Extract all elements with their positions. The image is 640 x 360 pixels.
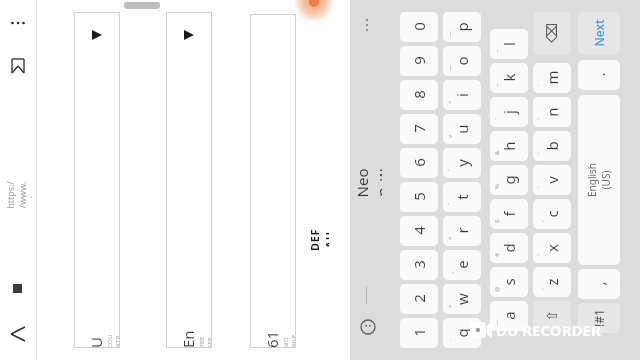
staticText: ¨ — [536, 83, 544, 87]
staticText: MOBILE NUMBER — [282, 334, 296, 348]
staticText: ¨ — [536, 151, 544, 155]
staticText: ¸ — [446, 271, 454, 273]
button[interactable]: Emoji — [356, 314, 380, 340]
staticText: × — [446, 304, 454, 308]
staticText: Neon_warriør23db — [352, 168, 382, 198]
button[interactable]: — — [443, 46, 481, 76]
button[interactable]: ^ — [443, 80, 481, 110]
staticText: 9 — [409, 56, 429, 65]
button[interactable]: Bookmark — [6, 52, 30, 80]
button[interactable]: ¨ — [533, 131, 571, 161]
staticText: — — [446, 64, 454, 71]
staticText: v — [542, 176, 562, 184]
staticText: a — [499, 311, 519, 320]
button[interactable]: @ — [490, 267, 528, 297]
staticText: u — [452, 124, 472, 134]
button[interactable]: More options — [6, 6, 30, 40]
staticText: . — [589, 72, 609, 77]
button[interactable]: !#1 — [578, 303, 620, 333]
staticText: ¸ — [536, 288, 544, 290]
button[interactable]: × — [443, 284, 481, 314]
staticText: b — [542, 141, 562, 151]
button[interactable]: Back — [6, 318, 30, 350]
button[interactable]: English (US) — [578, 95, 620, 265]
staticText: q — [452, 328, 472, 338]
staticText: n — [542, 107, 562, 117]
staticText: ^ — [446, 100, 454, 104]
staticText: !#1 — [591, 309, 607, 327]
button[interactable]: 1 — [400, 318, 438, 348]
staticText: 4 — [409, 226, 429, 235]
staticText: ~ — [493, 83, 501, 87]
button[interactable]: ⌫ — [533, 12, 571, 54]
staticText: c — [542, 210, 562, 218]
button[interactable]: ~ — [490, 29, 528, 59]
staticText: DU RECORDER — [496, 320, 601, 340]
staticText: English (US) — [585, 159, 613, 201]
staticText: ~ — [493, 49, 501, 53]
button[interactable]: . — [578, 60, 620, 90]
staticText: UNITED STATES — [86, 326, 108, 348]
button[interactable]: , — [578, 269, 620, 299]
staticText: h — [499, 141, 519, 151]
button[interactable]: ¤ — [443, 216, 481, 246]
button[interactable]: 4 — [400, 216, 438, 246]
staticText: d — [499, 243, 519, 253]
button[interactable]: — — [490, 301, 528, 331]
staticText: l — [499, 42, 519, 46]
staticText: DEFAULT BILLING ADDRESS — [307, 229, 329, 251]
button[interactable]: % — [490, 165, 528, 195]
staticText: 1 — [409, 328, 429, 337]
button[interactable]: ¸ — [443, 250, 481, 280]
button[interactable]: COUNTRY / REGION — [74, 12, 120, 348]
button[interactable]: 8 — [400, 80, 438, 110]
button[interactable]: 6 — [400, 148, 438, 178]
button[interactable]: v — [443, 114, 481, 144]
button[interactable]: ¨ — [533, 63, 571, 93]
button[interactable]: ~ — [490, 63, 528, 93]
button[interactable]: $ — [490, 199, 528, 229]
button[interactable]: 2 — [400, 284, 438, 314]
button[interactable]: # — [490, 233, 528, 263]
button[interactable]: ´ — [443, 148, 481, 178]
button[interactable]: · — [443, 318, 481, 348]
button[interactable]: 3 — [400, 250, 438, 280]
staticText: o — [452, 56, 472, 66]
button[interactable]: 5 — [400, 182, 438, 212]
staticText: ⇧ — [544, 310, 560, 322]
staticText: ´ — [536, 186, 544, 188]
staticText: y — [452, 159, 472, 167]
button[interactable]: ´ — [533, 97, 571, 127]
button[interactable]: ´ — [533, 233, 571, 263]
button[interactable]: 0 — [400, 12, 438, 42]
button[interactable]: MOBILE NUMBER — [250, 14, 296, 348]
button[interactable]: 7 — [400, 114, 438, 144]
button[interactable]: ´ — [533, 165, 571, 195]
staticText: 8 — [409, 90, 429, 99]
staticText: ¸ — [536, 220, 544, 222]
button[interactable]: & — [490, 131, 528, 161]
button[interactable]: — — [443, 12, 481, 42]
staticText: w — [452, 293, 472, 305]
button[interactable]: Next — [578, 12, 620, 54]
button[interactable]: ´ — [490, 97, 528, 127]
staticText: PREFERRED COMMUNICATION LANGUAGE * — [198, 334, 212, 348]
button[interactable]: ¸ — [533, 199, 571, 229]
staticText: 6183106602 — [262, 326, 284, 348]
button[interactable]: ´ — [443, 182, 481, 212]
button[interactable]: ¸ — [533, 267, 571, 297]
staticText: 2 — [409, 294, 429, 303]
staticText: — — [493, 319, 501, 326]
staticText: ¤ — [446, 236, 454, 240]
button[interactable]: ⇧ — [533, 301, 571, 331]
button[interactable]: PREFERRED COMMUNICATION LANGUAGE * — [166, 12, 212, 348]
staticText: # — [493, 253, 501, 257]
staticText: z — [542, 278, 562, 286]
staticText: COUNTRY / REGION — [106, 334, 120, 348]
staticText: @ — [493, 286, 501, 292]
staticText: k — [499, 73, 519, 82]
staticText: v — [446, 134, 454, 138]
staticText: ´ — [536, 254, 544, 256]
button[interactable]: 9 — [400, 46, 438, 76]
staticText: e — [452, 260, 472, 269]
